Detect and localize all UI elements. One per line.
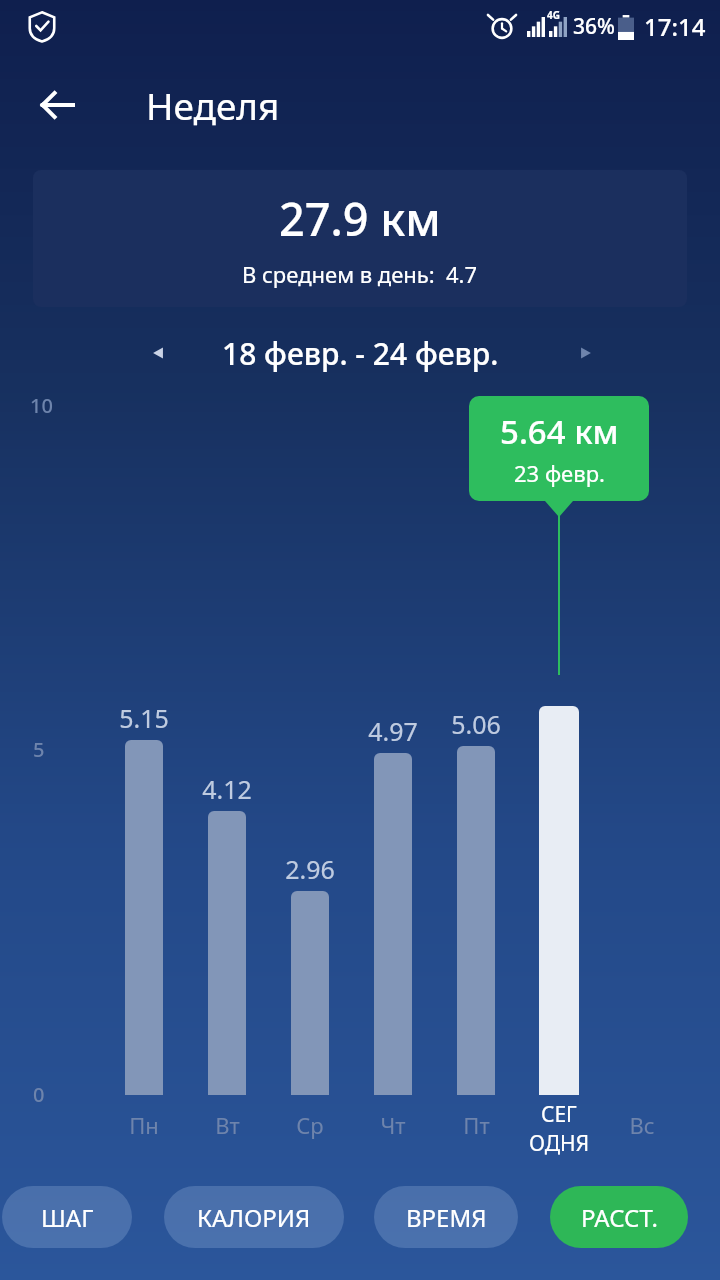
button[interactable]: РАССТ. [550, 1186, 688, 1248]
staticText: Вт [215, 1110, 240, 1140]
button[interactable]: ШАГ [2, 1186, 132, 1248]
button[interactable]: 5.64 км [469, 396, 649, 501]
button[interactable] [125, 740, 163, 1095]
button[interactable]: ВРЕМЯ [374, 1186, 518, 1248]
button[interactable]: Next week [558, 325, 614, 381]
staticText: Вс [629, 1110, 655, 1140]
staticText: 2.96 [285, 852, 335, 886]
staticText: 5 [33, 736, 45, 763]
staticText: 4.97 [368, 714, 418, 748]
staticText: 36% [573, 12, 615, 41]
staticText: 5.06 [451, 707, 501, 741]
staticText: ВРЕМЯ [406, 1201, 487, 1234]
staticText: 10 [30, 392, 53, 419]
button[interactable]: Back [24, 72, 90, 138]
staticText: РАССТ. [581, 1201, 658, 1234]
staticText: Чт [380, 1110, 406, 1140]
staticText: 4G [547, 8, 560, 22]
button[interactable] [457, 746, 495, 1095]
button[interactable] [374, 753, 412, 1095]
staticText: Пт [463, 1110, 490, 1140]
staticText: ОДНЯ [529, 1129, 590, 1158]
button[interactable]: Previous week [130, 325, 186, 381]
staticText: 23 февр. [514, 458, 605, 488]
button[interactable]: 27.9 км [33, 170, 687, 307]
staticText: 4.12 [202, 772, 252, 806]
staticText: Неделя [146, 80, 280, 130]
staticText: КАЛОРИЯ [197, 1201, 311, 1234]
button[interactable] [208, 811, 246, 1095]
staticText: 0 [33, 1081, 45, 1108]
staticText: 18 февр. - 24 февр. [222, 333, 499, 374]
staticText: 17:14 [644, 10, 706, 43]
staticText: 27.9 км [279, 188, 441, 249]
staticText: В среднем в день: 4.7 [242, 259, 478, 289]
staticText: 5.15 [119, 701, 169, 735]
button[interactable] [291, 891, 329, 1095]
staticText: Ср [296, 1110, 324, 1140]
staticText: ШАГ [41, 1201, 94, 1234]
staticText: 5.64 км [500, 409, 619, 454]
staticText: СЕГ [541, 1100, 577, 1129]
button[interactable]: КАЛОРИЯ [164, 1186, 344, 1248]
button[interactable] [539, 706, 579, 1095]
staticText: Пн [129, 1110, 159, 1140]
